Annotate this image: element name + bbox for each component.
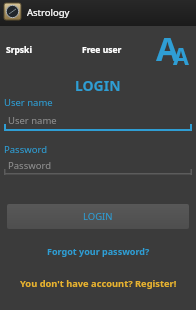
staticText: Password: [8, 159, 51, 172]
staticText: You don't have account? Register!: [20, 277, 177, 290]
button[interactable]: A: [152, 26, 192, 68]
button[interactable]: LOGIN: [7, 204, 189, 229]
staticText: A: [156, 26, 179, 68]
staticText: Srpski: [6, 44, 32, 56]
staticText: LOGIN: [75, 76, 121, 95]
staticText: Forgot your password?: [47, 245, 150, 257]
button[interactable]: Srpski: [0, 41, 60, 59]
staticText: Astrology: [27, 6, 70, 19]
button[interactable]: You don't have account? Register!: [20, 277, 177, 290]
staticText: LOGIN: [83, 210, 113, 223]
button[interactable]: Free user: [76, 41, 136, 59]
staticText: Free user: [82, 44, 122, 56]
staticText: Password: [4, 143, 47, 156]
button[interactable]: Forgot your password?: [47, 245, 150, 257]
staticText: User name: [4, 96, 53, 109]
staticText: User name: [8, 114, 57, 127]
staticText: A: [173, 40, 189, 71]
